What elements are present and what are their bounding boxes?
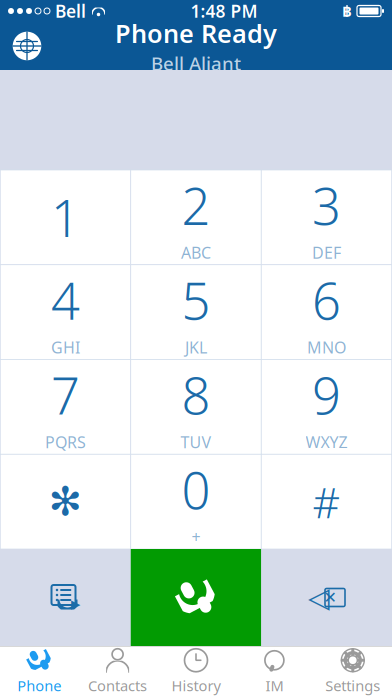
staticText: 8 — [181, 361, 210, 428]
staticText: MNO — [307, 337, 346, 358]
staticText: 2 — [181, 172, 210, 239]
staticText: + — [191, 526, 200, 547]
staticText: 3 — [312, 172, 341, 239]
staticText: 1 — [51, 184, 80, 251]
button[interactable]: 7 — [0, 359, 131, 454]
button[interactable]: # — [261, 454, 392, 549]
button[interactable]: 5 — [131, 265, 261, 360]
staticText: Settings — [325, 676, 380, 695]
button[interactable]: ✻ — [0, 454, 131, 549]
staticText: ◁ — [308, 582, 330, 613]
button[interactable]: History — [157, 646, 235, 696]
button[interactable]: 2 — [131, 170, 261, 265]
staticText: 6 — [312, 266, 341, 334]
staticText: ✕ — [323, 588, 336, 607]
staticText: ✻ — [48, 479, 82, 524]
staticText: Bell Aliant — [151, 51, 241, 76]
staticText: JKL — [185, 337, 207, 358]
button[interactable]: Backspace — [261, 549, 392, 646]
staticText: 5 — [181, 266, 210, 334]
staticText: WXYZ — [305, 431, 347, 453]
staticText: History — [171, 676, 220, 695]
button[interactable]: 0 — [131, 454, 261, 549]
button[interactable]: 1 — [0, 170, 131, 265]
staticText: IM — [265, 676, 283, 695]
staticText: ▸ — [71, 593, 80, 614]
button[interactable]: 6 — [261, 265, 392, 360]
button[interactable]: Phone — [0, 646, 78, 696]
staticText: 4 — [51, 266, 80, 334]
button[interactable]: IM — [235, 646, 314, 696]
staticText: ABC — [181, 242, 211, 263]
button[interactable]: Network — [0, 22, 54, 70]
staticText: # — [312, 473, 340, 530]
button[interactable]: Contacts — [78, 646, 157, 696]
button[interactable]: Call log — [0, 549, 131, 646]
button[interactable]: Call — [131, 549, 261, 646]
staticText: 1:48 PM — [190, 0, 257, 22]
staticText: DEF — [312, 242, 341, 263]
staticText: 9 — [312, 361, 341, 428]
staticText: TUV — [180, 431, 211, 453]
staticText: PQRS — [45, 431, 86, 453]
staticText: 7 — [51, 361, 80, 428]
staticText: Phone Ready — [115, 16, 277, 50]
button[interactable]: 4 — [0, 265, 131, 360]
button[interactable]: 9 — [261, 359, 392, 454]
button[interactable]: 8 — [131, 359, 261, 454]
button[interactable]: Settings — [314, 646, 392, 696]
staticText: 0 — [181, 456, 210, 523]
staticText: Contacts — [88, 676, 147, 695]
staticText: GHI — [51, 337, 80, 358]
staticText: B — [342, 1, 352, 21]
staticText: Phone — [17, 676, 61, 695]
button[interactable]: 3 — [261, 170, 392, 265]
staticText: Bell — [55, 0, 86, 22]
